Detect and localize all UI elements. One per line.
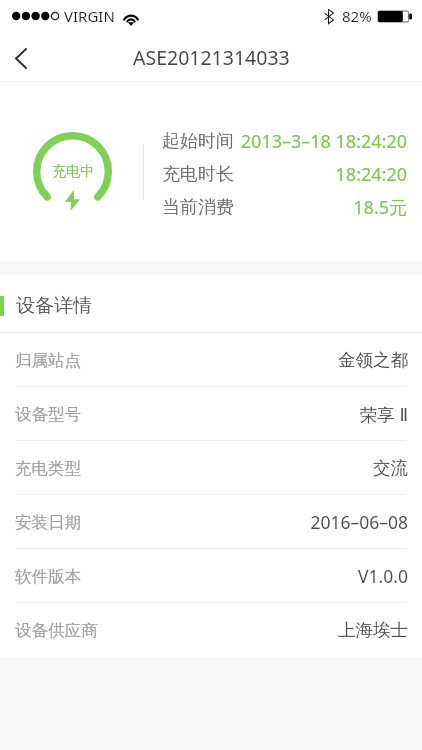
staticText: 软件版本	[15, 566, 81, 587]
button[interactable]: 充电类型	[0, 441, 422, 495]
staticText: 起始时间	[162, 130, 234, 153]
staticText: ASE20121314033	[133, 44, 290, 71]
staticText: 设备供应商	[15, 620, 98, 641]
staticText: 充电中	[52, 163, 94, 181]
button[interactable]: 归属站点	[0, 333, 422, 387]
staticText: 充电类型	[15, 458, 81, 479]
staticText: 18:24:20	[234, 162, 407, 187]
staticText: 金领之都	[81, 349, 408, 371]
staticText: 安装日期	[15, 512, 81, 533]
button[interactable]: 安装日期	[0, 495, 422, 549]
staticText: 82%	[342, 6, 372, 26]
button[interactable]: Back	[0, 35, 46, 82]
staticText: 荣享 Ⅱ	[81, 402, 408, 426]
staticText: VIRGIN	[64, 6, 115, 26]
button[interactable]: 软件版本	[0, 549, 422, 603]
staticText: 2016–06–08	[81, 510, 408, 534]
staticText: 归属站点	[15, 350, 81, 371]
staticText: 上海埃士	[98, 619, 408, 641]
staticText: 充电时长	[162, 163, 234, 186]
staticText: 交流	[81, 457, 408, 479]
staticText: 当前消费	[162, 196, 234, 219]
staticText: 设备型号	[15, 404, 81, 425]
staticText: V1.0.0	[81, 564, 408, 588]
staticText: 设备详情	[16, 294, 92, 318]
button[interactable]: 设备供应商	[0, 603, 422, 657]
staticText: 18.5元	[234, 195, 407, 220]
button[interactable]: 设备型号	[0, 387, 422, 441]
staticText: 2013–3–18 18:24:20	[234, 129, 407, 154]
